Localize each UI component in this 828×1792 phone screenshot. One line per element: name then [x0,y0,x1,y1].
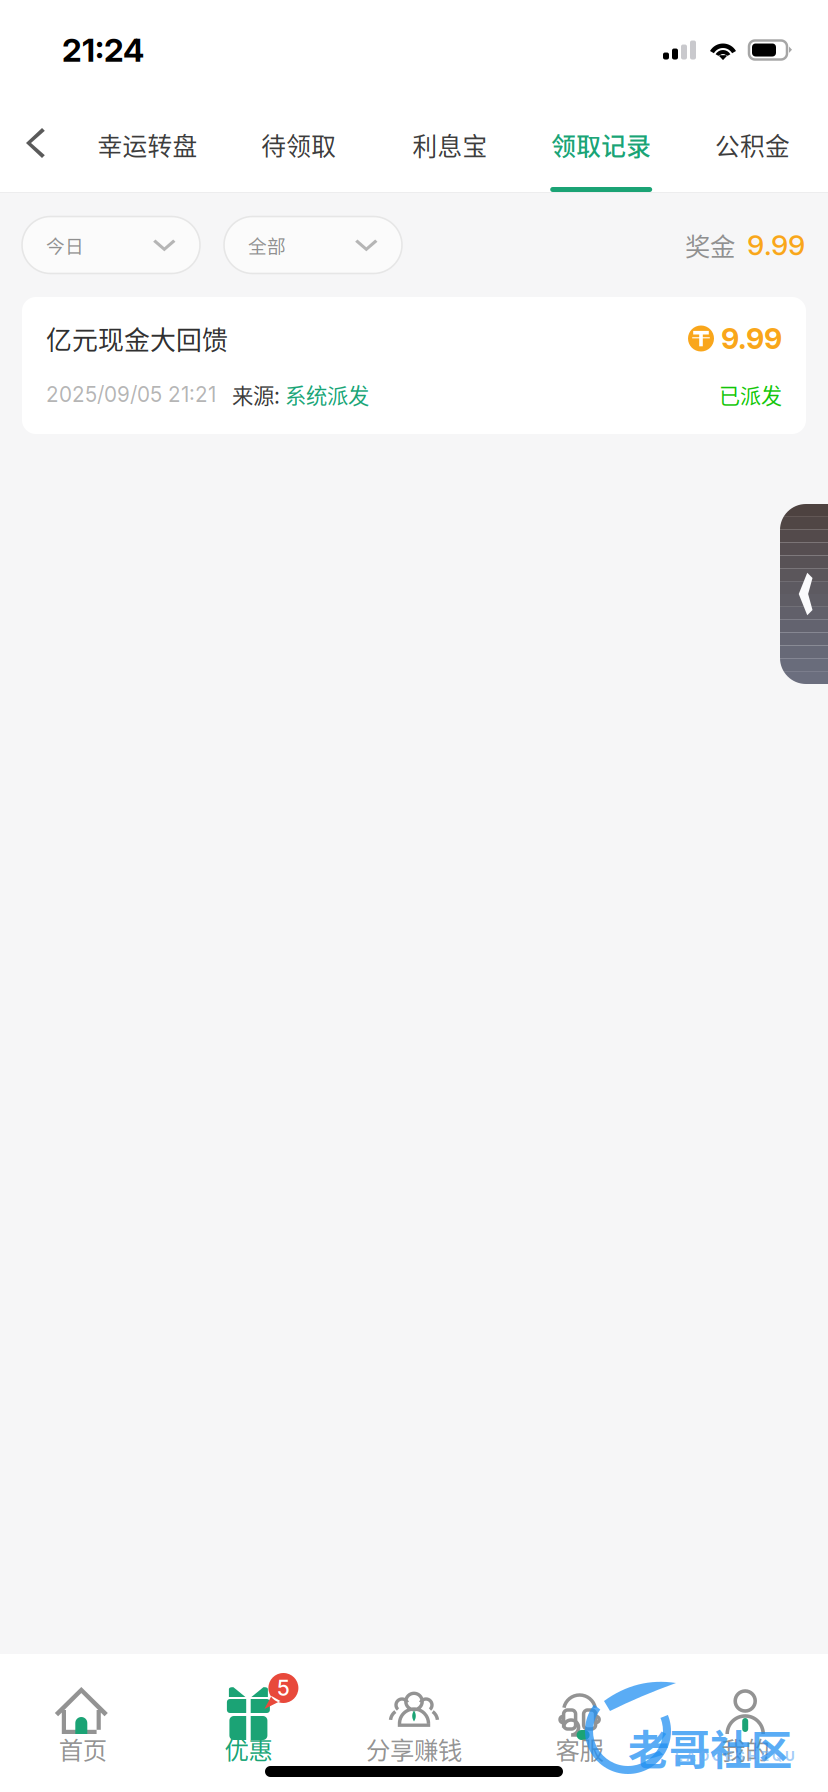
button[interactable]: 全部 [224,216,402,273]
staticText: 老哥社区 [628,1717,792,1777]
button[interactable]: 首页 [0,1654,166,1792]
button[interactable]: 领取记录 [526,94,677,192]
staticText: 优惠 [224,1731,272,1766]
staticText: 公积金 [715,127,790,163]
button[interactable]: 分享赚钱 [331,1654,497,1792]
staticText: 9.99 [747,228,805,262]
staticText: 幸运转盘 [98,127,198,163]
button[interactable]: 5 [166,1654,331,1792]
button[interactable]: Expand side panel [780,504,828,684]
staticText: 亿元现金大回馈 [46,320,228,357]
staticText: 已派发 [719,379,782,410]
staticText: 奖金 [685,227,735,263]
button[interactable]: 今日 [22,216,200,273]
staticText: 9.99 [721,321,782,356]
staticText: 领取记录 [551,127,651,163]
staticText: 今日 [46,231,84,258]
button[interactable]: 待领取 [223,94,374,192]
staticText: 待领取 [261,127,336,163]
staticText: 我的 [721,1731,769,1766]
button[interactable]: Back [0,94,72,192]
button[interactable]: 客服 [497,1654,662,1792]
button[interactable]: 公积金 [677,94,828,192]
staticText: 21:24 [62,31,144,69]
staticText: 来源: [232,379,280,410]
staticText: 系统派发 [285,379,369,410]
button[interactable]: 我的 [662,1654,828,1792]
staticText: 首页 [59,1731,107,1766]
staticText: 分享赚钱 [366,1731,462,1766]
button[interactable]: 利息宝 [374,94,526,192]
staticText: 5 [277,1675,290,1701]
staticText: 客服 [556,1731,604,1766]
staticText: 全部 [248,231,286,258]
staticText: L A O G E S H E Q U [675,1748,795,1764]
button[interactable]: 幸运转盘 [72,94,223,192]
staticText: 利息宝 [412,127,487,163]
staticText: 2025/09/05 21:21 [46,382,216,407]
